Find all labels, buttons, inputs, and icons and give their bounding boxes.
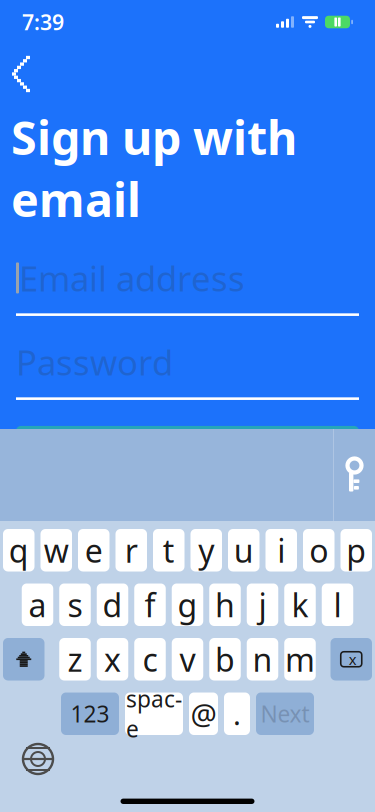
button[interactable]: n [247,638,278,680]
staticText: y [198,529,214,571]
button[interactable]: b [209,638,241,680]
staticText: l [333,583,341,626]
button[interactable]: c [134,638,166,680]
staticText: a [28,583,46,626]
staticText: f [144,583,155,626]
staticText: z [67,638,82,680]
button[interactable]: u [228,529,259,571]
staticText: r [125,529,138,571]
staticText: o [309,529,328,571]
button[interactable]: space [125,692,183,735]
button[interactable]: i [265,529,297,571]
button[interactable]: . [224,692,250,735]
staticText: s [67,583,82,626]
staticText: space [126,684,182,744]
button[interactable]: q [3,529,34,571]
button[interactable]: Delete [330,638,372,680]
staticText: x [104,638,121,680]
staticText: . [233,694,241,733]
button[interactable]: m [284,638,316,680]
button[interactable]: Shift [3,638,44,680]
staticText: q [9,529,29,571]
staticText: i [277,529,285,571]
button[interactable]: y [190,529,222,571]
button[interactable]: d [97,583,128,626]
button[interactable]: Back [0,50,48,98]
button[interactable]: @ [189,692,218,735]
button[interactable]: s [59,583,91,626]
button[interactable]: 123 [61,692,119,735]
staticText: n [252,638,272,680]
button[interactable]: t [153,529,184,571]
button[interactable]: f [134,583,166,626]
button[interactable]: h [209,583,241,626]
staticText: d [102,583,122,626]
button[interactable]: p [340,529,372,571]
button[interactable]: k [284,583,316,626]
staticText: j [258,583,266,626]
button[interactable]: r [115,529,147,571]
staticText: x [349,649,357,669]
button[interactable]: o [303,529,334,571]
staticText: g [177,583,197,626]
staticText: Email address [19,255,245,301]
staticText: c [142,638,157,680]
button[interactable]: Sign up with email [16,426,359,472]
button[interactable]: j [247,583,278,626]
button[interactable]: z [59,638,91,680]
staticText: w [44,529,69,571]
button[interactable]: Next [256,692,314,735]
button[interactable]: l [322,583,353,626]
staticText: Next [260,699,309,729]
staticText: Sign up with email [11,106,297,230]
button[interactable]: v [172,638,203,680]
button[interactable]: a [22,583,53,626]
button[interactable]: Passwords [334,429,375,521]
staticText: v [179,638,195,680]
button[interactable]: w [40,529,72,571]
staticText: t [163,529,175,571]
staticText: 7:39 [22,8,64,36]
staticText: Password [16,339,173,385]
staticText: 123 [70,699,109,729]
button[interactable]: g [172,583,203,626]
staticText: b [215,638,235,680]
staticText: k [291,583,308,626]
button[interactable]: x [97,638,128,680]
staticText: e [85,529,103,571]
staticText: @ [190,694,216,733]
staticText: h [215,583,235,626]
button[interactable]: e [78,529,109,571]
staticText: m [285,638,315,680]
button[interactable]: Next keyboard [20,741,56,777]
staticText: u [234,529,254,571]
staticText: p [346,529,366,571]
